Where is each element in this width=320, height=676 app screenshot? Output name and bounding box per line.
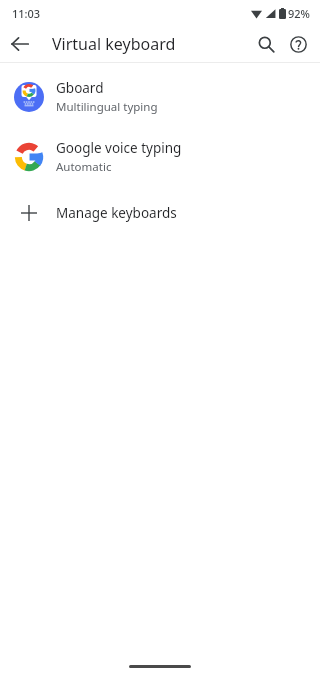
button[interactable]: Search (250, 28, 282, 60)
staticText: Multilingual typing (56, 99, 158, 115)
staticText: Gboard (56, 79, 104, 97)
button[interactable]: Back (4, 28, 36, 60)
staticText: Automatic (56, 159, 112, 175)
button[interactable]: Help (282, 28, 314, 60)
staticText: Virtual keyboard (52, 33, 176, 55)
staticText: 92% (288, 6, 310, 21)
staticText: 11:03 (12, 6, 41, 21)
staticText: Manage keyboards (56, 204, 177, 222)
staticText: Google voice typing (56, 139, 182, 157)
button[interactable]: Gboard (0, 78, 320, 116)
button[interactable]: Google voice typing (0, 138, 320, 176)
button[interactable]: Manage keyboards (0, 198, 320, 228)
